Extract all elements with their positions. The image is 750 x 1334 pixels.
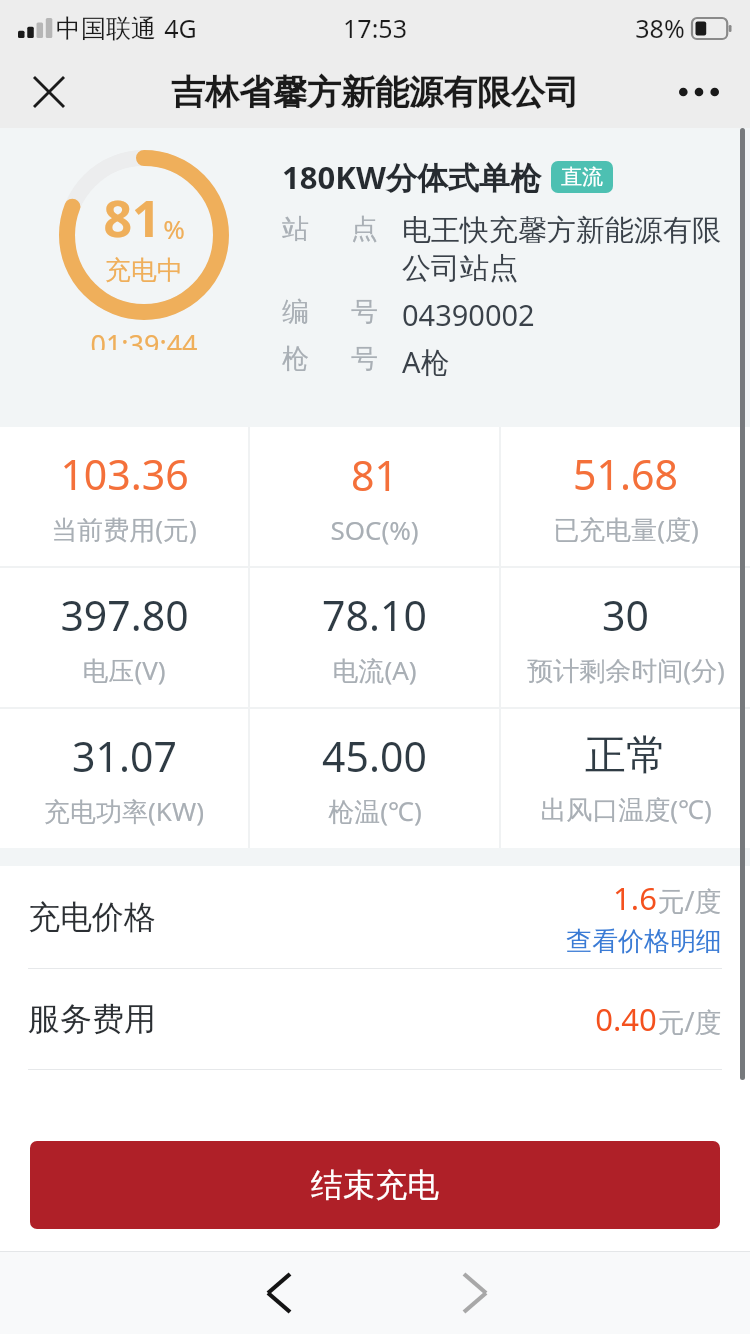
staticText: 编	[282, 295, 309, 329]
staticText: 结束充电	[311, 1165, 439, 1205]
button[interactable]: Close	[22, 65, 76, 119]
staticText: 查看价格明细	[566, 925, 722, 958]
staticText: 枪温(℃)	[328, 793, 422, 829]
staticText: 17:53	[343, 11, 407, 45]
staticText: 4G	[164, 11, 197, 45]
button[interactable]: 充电价格	[0, 866, 750, 968]
staticText: 元/度	[657, 882, 722, 919]
button[interactable]: Forward	[443, 1261, 507, 1325]
staticText: 电王快充馨方新能源有限公司站点	[402, 212, 724, 287]
staticText: 103.36	[60, 446, 189, 502]
staticText: 397.80	[60, 587, 189, 643]
staticText: 号	[351, 295, 378, 329]
staticText: 已充电量(度)	[553, 511, 699, 547]
staticText: 预计剩余时间(分)	[527, 652, 725, 688]
staticText: 元/度	[657, 1003, 722, 1040]
staticText: 中国联通	[56, 13, 156, 44]
button[interactable]: 结束充电	[30, 1141, 720, 1229]
staticText: 站	[282, 212, 309, 246]
staticText: 点	[351, 212, 378, 246]
button[interactable]: 服务费用	[0, 969, 750, 1069]
staticText: 电压(V)	[82, 652, 166, 688]
staticText: 充电功率(KW)	[44, 793, 204, 829]
staticText: 当前费用(元)	[51, 511, 197, 547]
staticText: 枪	[282, 342, 309, 376]
button[interactable]: Back	[247, 1261, 311, 1325]
staticText: 81	[103, 184, 161, 252]
staticText: 38%	[635, 11, 685, 45]
staticText: 31.07	[72, 728, 177, 784]
staticText: 充电价格	[28, 897, 156, 937]
staticText: 充电中	[105, 254, 183, 287]
staticText: 吉林省馨方新能源有限公司	[171, 71, 579, 114]
staticText: A枪	[402, 342, 450, 382]
staticText: 正常	[585, 730, 667, 782]
staticText: 直流	[561, 164, 603, 190]
staticText: %	[163, 211, 185, 246]
staticText: 号	[351, 342, 378, 376]
staticText: 81	[351, 447, 398, 503]
staticText: 服务费用	[28, 999, 156, 1039]
staticText: 30	[602, 587, 649, 643]
staticText: 0.40	[595, 998, 657, 1040]
staticText: 45.00	[322, 728, 427, 784]
staticText: 1.6	[613, 877, 657, 919]
button[interactable]: More options	[672, 65, 726, 119]
staticText: 78.10	[322, 587, 427, 643]
staticText: 电流(A)	[332, 652, 417, 688]
staticText: SOC(%)	[330, 512, 419, 547]
staticText: 01:39:44	[90, 326, 198, 350]
staticText: 180KW分体式单枪	[282, 156, 541, 198]
staticText: 51.68	[573, 446, 678, 502]
staticText: 04390002	[402, 295, 535, 334]
staticText: 出风口温度(℃)	[540, 791, 712, 827]
